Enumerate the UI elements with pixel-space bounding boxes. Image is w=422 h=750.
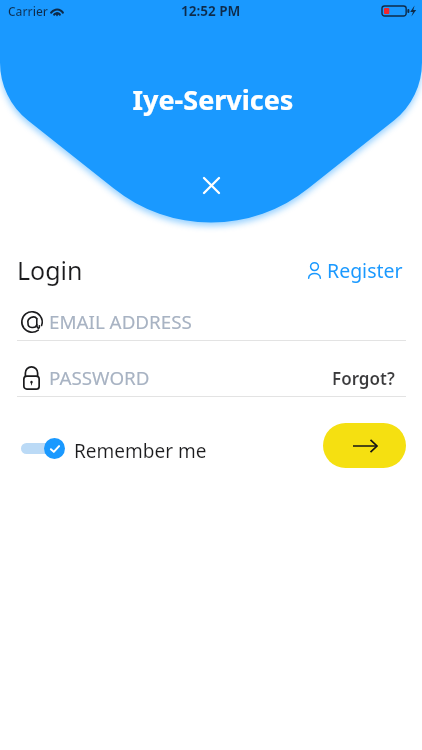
staticText: Login xyxy=(17,253,83,287)
button[interactable]: Close xyxy=(195,169,227,201)
staticText: Carrier xyxy=(8,3,48,19)
staticText: EMAIL ADDRESS xyxy=(49,309,192,335)
button[interactable]: Remember me xyxy=(21,435,207,461)
staticText: Iye-Services xyxy=(2,81,422,118)
staticText: Register xyxy=(327,257,403,284)
button[interactable]: Register xyxy=(308,257,403,284)
staticText: Remember me xyxy=(74,438,207,464)
staticText: PASSWORD xyxy=(49,365,150,391)
staticText: 12:52 PM xyxy=(181,2,241,20)
button[interactable]: Forgot? xyxy=(332,367,395,390)
button[interactable]: Continue xyxy=(323,423,406,468)
